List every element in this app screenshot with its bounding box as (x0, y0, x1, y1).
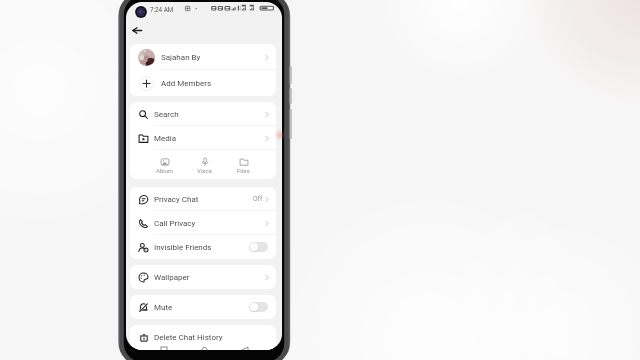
button[interactable]: Back (238, 344, 250, 350)
button[interactable]: Back (129, 22, 145, 38)
button[interactable]: Sajahan By (130, 44, 276, 70)
button[interactable]: Files (224, 150, 263, 179)
staticText: Invisible Friends (154, 243, 212, 252)
button[interactable]: Home (198, 344, 210, 350)
button[interactable]: Recents (158, 344, 170, 350)
staticText: Call Privacy (154, 219, 196, 228)
button[interactable]: Wallpaper (130, 265, 276, 289)
button[interactable]: Album (145, 150, 185, 179)
staticText: Off (253, 195, 263, 203)
button[interactable]: Media (130, 126, 276, 150)
staticText: Album (156, 167, 174, 174)
staticText: Media (154, 134, 177, 143)
staticText: Mute (154, 303, 173, 312)
button[interactable]: Add Members (130, 70, 276, 96)
staticText: Files (237, 167, 250, 174)
staticText: 7:24 AM (150, 6, 174, 13)
button[interactable]: Delete Chat History (130, 325, 276, 350)
staticText: Search (154, 110, 179, 119)
button[interactable]: Search (130, 102, 276, 126)
staticText: Add Members (161, 79, 212, 88)
button[interactable]: Privacy Chat (130, 187, 276, 211)
button[interactable]: Mute (130, 295, 276, 319)
staticText: Sajahan By (161, 53, 201, 62)
staticText: Wallpaper (154, 273, 190, 282)
button[interactable]: Voice (185, 150, 224, 179)
staticText: Voice (197, 167, 212, 174)
button[interactable]: Call Privacy (130, 211, 276, 235)
staticText: Delete Chat History (154, 333, 223, 342)
button[interactable]: Invisible Friends (130, 235, 276, 259)
staticText: Privacy Chat (154, 195, 199, 204)
